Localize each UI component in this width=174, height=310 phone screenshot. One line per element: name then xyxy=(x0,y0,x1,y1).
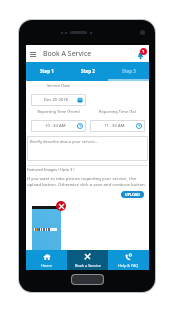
staticText: 10 : 30 AM xyxy=(45,123,66,129)
staticText: 1 xyxy=(142,49,145,54)
staticText: Service Date xyxy=(31,83,86,88)
staticText: Reporting Time (To) xyxy=(90,109,145,114)
staticText: Home xyxy=(41,263,52,268)
staticText: UPLOAD xyxy=(125,192,140,197)
staticText: Book A Service xyxy=(43,49,92,59)
staticText: Dec 20 2018 xyxy=(44,97,68,103)
button[interactable]: Open navigation menu xyxy=(27,48,39,60)
button[interactable]: Briefly describe about your service... xyxy=(27,136,148,161)
button[interactable]: 10 : 30 AM xyxy=(31,120,86,132)
staticText: Step 2 xyxy=(81,68,95,74)
staticText: Briefly describe about your service... xyxy=(30,139,99,144)
staticText: Featured Images ( Upto 3 ) xyxy=(27,167,75,172)
button[interactable]: Step 1 xyxy=(26,62,67,81)
staticText: Reporting Time (From) xyxy=(31,109,86,114)
button[interactable]: Help & FAQ xyxy=(108,250,149,270)
staticText: Step 1 xyxy=(40,68,54,74)
button[interactable]: 11 : 30 AM xyxy=(90,120,145,132)
button[interactable]: Book a Service xyxy=(67,250,108,270)
button[interactable]: Home xyxy=(26,250,67,270)
button[interactable]: Step 2 xyxy=(67,62,108,81)
staticText: 11 : 30 AM xyxy=(104,123,125,129)
button[interactable]: Notifications xyxy=(133,46,148,61)
staticText: Help & FAQ xyxy=(118,263,139,268)
button[interactable]: UPLOAD xyxy=(121,191,144,198)
button[interactable]: Dec 20 2018 xyxy=(31,94,86,106)
button[interactable]: Step 3 xyxy=(108,62,149,81)
staticText: If you want to take picture regarding yo… xyxy=(27,175,146,188)
staticText: Book a Service xyxy=(75,263,101,268)
staticText: Step 3 xyxy=(122,68,136,74)
button[interactable]: Remove image xyxy=(56,201,66,211)
